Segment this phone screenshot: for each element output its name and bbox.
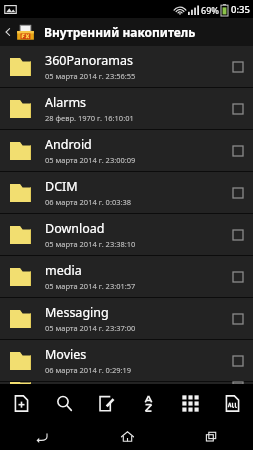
button[interactable]: Select all	[211, 384, 253, 423]
staticText: Movies	[45, 346, 87, 363]
button[interactable]: Select DCIM	[223, 178, 253, 208]
staticText: 05 марта 2014 г. 23:38:10	[45, 239, 136, 249]
other: Back	[3, 27, 13, 37]
button[interactable]: Select 360Panoramas	[223, 52, 253, 82]
button[interactable]: Edit	[85, 384, 127, 423]
button[interactable]: Messaging	[0, 298, 253, 339]
button[interactable]: 360Panoramas	[0, 46, 253, 87]
button[interactable]: Select Movies	[223, 346, 253, 376]
staticText: Download	[45, 220, 105, 237]
button[interactable]: Download	[0, 214, 253, 255]
button[interactable]: Select Music	[223, 382, 253, 384]
button[interactable]: Select Download	[223, 220, 253, 250]
staticText: 05 марта 2014 г. 23:56:55	[45, 71, 136, 81]
staticText: 69%	[201, 4, 219, 16]
button[interactable]: Sort A to Z	[127, 384, 169, 423]
button[interactable]: Alarms	[0, 88, 253, 129]
button[interactable]: Grid view	[169, 384, 211, 423]
button[interactable]: Search	[43, 384, 85, 423]
button[interactable]: media	[0, 256, 253, 297]
staticText: 05 марта 2014 г. 23:37:00	[45, 323, 136, 333]
staticText: Android	[45, 136, 92, 153]
button[interactable]: New file	[0, 384, 43, 423]
staticText: Messaging	[45, 304, 109, 321]
button[interactable]: Select Messaging	[223, 304, 253, 334]
staticText: media	[45, 262, 82, 279]
staticText: Внутренний накопитель	[44, 24, 196, 40]
staticText: 05 марта 2014 г. 23:00:09	[45, 155, 136, 165]
staticText: 0:35	[231, 3, 250, 16]
staticText: 360Panoramas	[45, 52, 133, 69]
button[interactable]: DCIM	[0, 172, 253, 213]
button[interactable]: Back	[0, 18, 253, 46]
staticText: 05 марта 2014 г. 23:01:57	[45, 281, 136, 291]
button[interactable]: Home	[85, 423, 169, 450]
button[interactable]: Select media	[223, 262, 253, 292]
button[interactable]: Select Alarms	[223, 94, 253, 124]
button[interactable]: Back	[0, 423, 85, 450]
staticText: Alarms	[45, 94, 87, 111]
staticText: 06 марта 2014 г. 0:29:19	[45, 365, 132, 375]
staticText: 06 марта 2014 г. 0:03:38	[45, 197, 132, 207]
button[interactable]: Music	[0, 382, 253, 384]
staticText: DCIM	[45, 178, 78, 195]
button[interactable]: Movies	[0, 340, 253, 381]
button[interactable]: Recents	[169, 423, 253, 450]
button[interactable]: Android	[0, 130, 253, 171]
button[interactable]: Select Android	[223, 136, 253, 166]
staticText: 28 февр. 1970 г. 16:10:01	[45, 113, 134, 123]
